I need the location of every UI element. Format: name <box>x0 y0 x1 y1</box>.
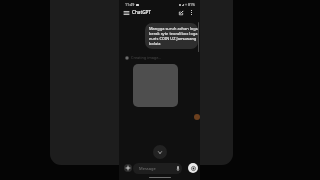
button[interactable]: Scroll to bottom <box>153 145 167 159</box>
button[interactable]: Voice mode <box>188 163 198 173</box>
button[interactable]: New chat <box>176 8 185 17</box>
staticText: Mangga suruh achan loga berak syte teora… <box>149 26 198 46</box>
staticText: 11:49 <box>125 2 135 7</box>
staticText: Message <box>139 166 156 171</box>
button[interactable]: Mangga suruh achan loga berak syte teora… <box>145 23 198 49</box>
staticText: ChatGPT <box>132 9 151 15</box>
staticText: 81% <box>188 2 196 7</box>
button[interactable]: Voice input <box>175 165 181 171</box>
button[interactable]: Add attachment <box>124 164 132 172</box>
button[interactable]: Open navigation menu <box>122 8 131 17</box>
button[interactable]: ChatGPT <box>132 9 151 15</box>
button[interactable]: Generated image <box>133 64 178 107</box>
button[interactable]: More options <box>187 8 196 17</box>
staticText: Creating image... <box>131 55 162 60</box>
button[interactable]: Message <box>133 163 182 174</box>
